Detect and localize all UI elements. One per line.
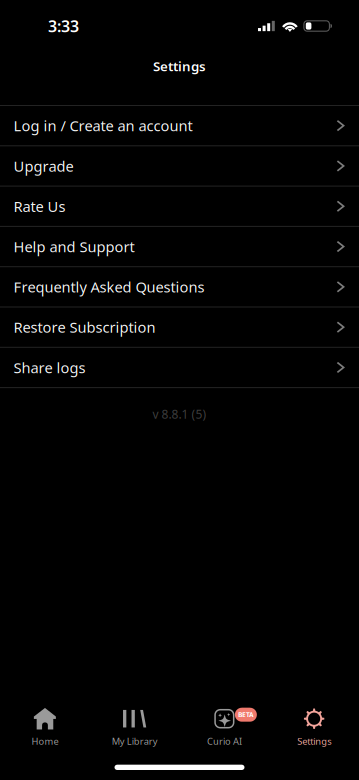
button[interactable]: My Library (90, 708, 180, 747)
button[interactable]: Rate Us (0, 187, 359, 227)
staticText: Settings (153, 57, 206, 75)
button[interactable]: BETA (179, 708, 269, 747)
staticText: Frequently Asked Questions (13, 277, 204, 297)
staticText: Curio AI (207, 735, 242, 747)
staticText: My Library (112, 735, 158, 747)
button[interactable]: Home (0, 708, 90, 747)
staticText: Settings (297, 735, 331, 747)
button[interactable]: Frequently Asked Questions (0, 267, 359, 307)
button[interactable]: Help and Support (0, 227, 359, 267)
button[interactable]: Settings (269, 708, 359, 747)
button[interactable]: Log in / Create an account (0, 106, 359, 146)
staticText: Rate Us (13, 196, 65, 216)
staticText: Share logs (13, 358, 85, 377)
staticText: Restore Subscription (13, 317, 155, 337)
staticText: Upgrade (13, 156, 73, 176)
staticText: Home (31, 735, 58, 747)
button[interactable]: Share logs (0, 348, 359, 388)
button[interactable]: Upgrade (0, 146, 359, 187)
button[interactable]: Restore Subscription (0, 307, 359, 348)
staticText: Log in / Create an account (13, 116, 192, 135)
staticText: Help and Support (13, 237, 134, 256)
staticText: v 8.8.1 (5) (152, 406, 206, 422)
staticText: 3:33 (48, 15, 79, 37)
staticText: BETA (238, 710, 254, 719)
